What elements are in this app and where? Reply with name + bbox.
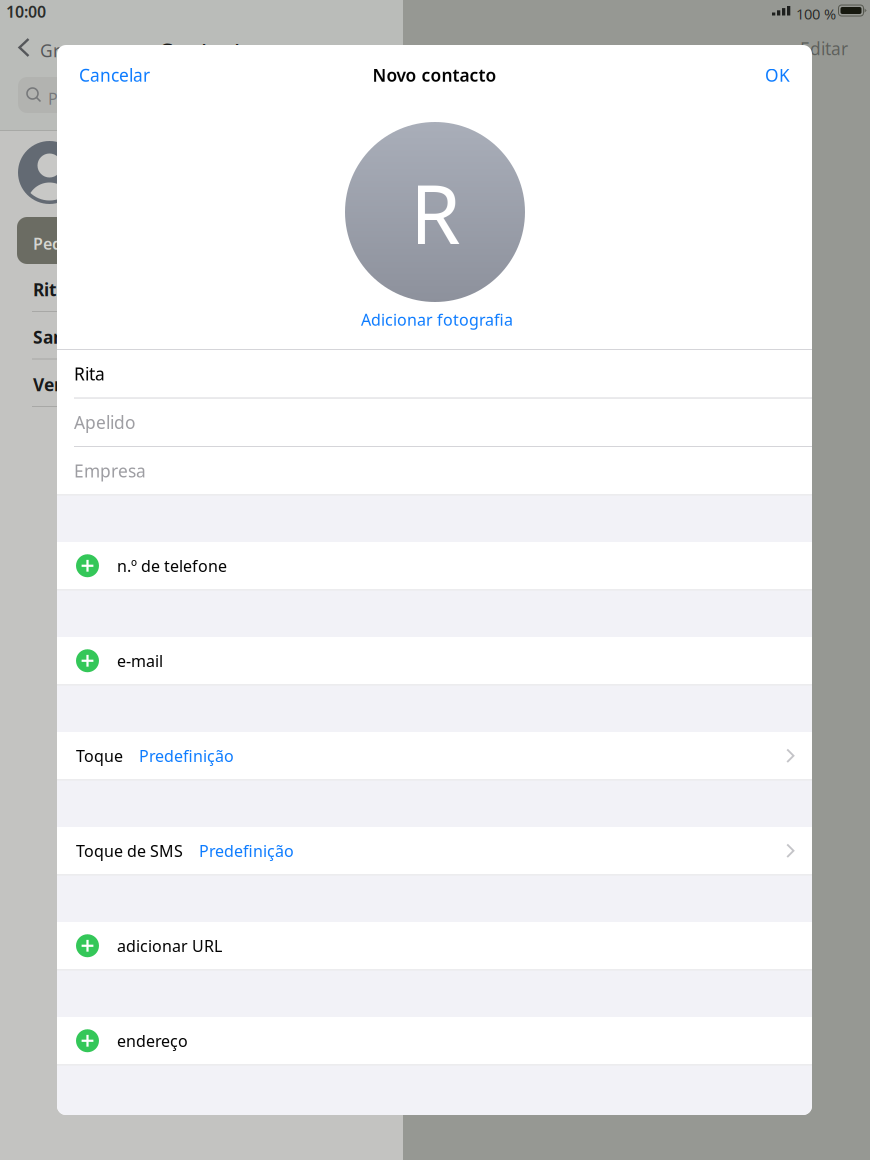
- staticText: Sandra Costa: [33, 325, 146, 348]
- staticText: Grupos: [40, 39, 100, 62]
- staticText: 100 %: [796, 4, 836, 23]
- staticText: Apelido: [74, 411, 135, 434]
- staticText: n.º de telefone: [117, 555, 227, 576]
- button[interactable]: Toque de SMS: [57, 827, 812, 874]
- staticText: Toque: [76, 745, 123, 766]
- staticText: R: [409, 157, 460, 267]
- button[interactable]: e-mail: [57, 637, 812, 684]
- staticText: OK: [765, 63, 790, 86]
- staticText: Predefinição: [199, 840, 294, 861]
- staticText: Pedro Ferreira: [33, 233, 145, 254]
- staticText: Verónica Dias: [33, 373, 149, 396]
- staticText: Pesquisar: [48, 88, 123, 109]
- staticText: endereço: [117, 1030, 188, 1051]
- staticText: Novo contacto: [372, 63, 496, 86]
- button[interactable]: Toque: [57, 732, 812, 779]
- staticText: Empresa: [74, 459, 146, 482]
- staticText: Cancelar: [79, 63, 150, 86]
- staticText: e-mail: [117, 650, 163, 671]
- staticText: Toque de SMS: [76, 840, 183, 861]
- staticText: 10:00: [6, 1, 46, 22]
- button[interactable]: Adicionar fotografia: [361, 309, 513, 330]
- button[interactable]: adicionar URL: [57, 922, 812, 969]
- button[interactable]: n.º de telefone: [57, 542, 812, 589]
- staticText: Rita: [74, 362, 105, 385]
- button[interactable]: Cancelar: [79, 63, 150, 86]
- staticText: Predefinição: [139, 745, 234, 766]
- staticText: Contactos: [159, 36, 266, 64]
- staticText: Editar: [800, 37, 848, 60]
- staticText: Adicionar fotografia: [361, 309, 513, 330]
- button[interactable]: OK: [765, 63, 790, 86]
- staticText: Rita Alves: [33, 278, 118, 301]
- button[interactable]: endereço: [57, 1017, 812, 1064]
- staticText: adicionar URL: [117, 935, 222, 956]
